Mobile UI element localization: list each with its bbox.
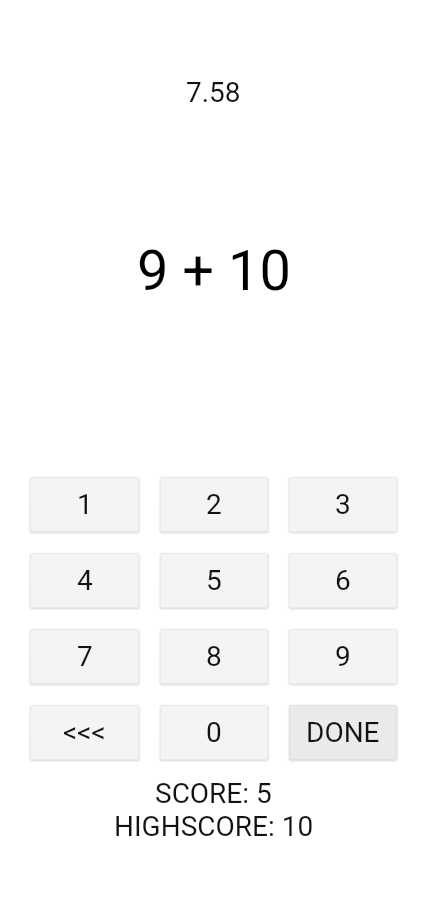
staticText: 7 — [77, 640, 93, 673]
button[interactable]: 8 — [160, 629, 268, 684]
staticText: 8 — [206, 640, 222, 673]
button[interactable]: Backspace — [30, 705, 139, 760]
button[interactable]: 1 — [30, 477, 139, 532]
button[interactable]: 6 — [289, 553, 397, 608]
staticText: 4 — [77, 564, 93, 597]
button[interactable]: 9 — [289, 629, 397, 684]
button[interactable]: 5 — [160, 553, 268, 608]
staticText: 9 + 10 — [137, 238, 291, 304]
staticText: 1 — [77, 488, 93, 521]
staticText: DONE — [306, 716, 380, 749]
staticText: 0 — [206, 716, 222, 749]
staticText: 7.58 — [186, 76, 241, 109]
staticText: 5 — [206, 564, 222, 597]
staticText: 2 — [206, 488, 222, 521]
staticText: 6 — [335, 564, 351, 597]
button[interactable]: 3 — [289, 477, 397, 532]
button[interactable]: 4 — [30, 553, 139, 608]
staticText: HIGHSCORE: 10 — [114, 810, 314, 843]
staticText: 3 — [335, 488, 351, 521]
button[interactable]: 0 — [160, 705, 268, 760]
button[interactable]: 2 — [160, 477, 268, 532]
button[interactable]: 7 — [30, 629, 139, 684]
staticText: <<< — [63, 716, 106, 749]
staticText: SCORE: 5 — [155, 777, 272, 810]
staticText: 9 — [335, 640, 351, 673]
button[interactable]: DONE — [289, 705, 397, 760]
